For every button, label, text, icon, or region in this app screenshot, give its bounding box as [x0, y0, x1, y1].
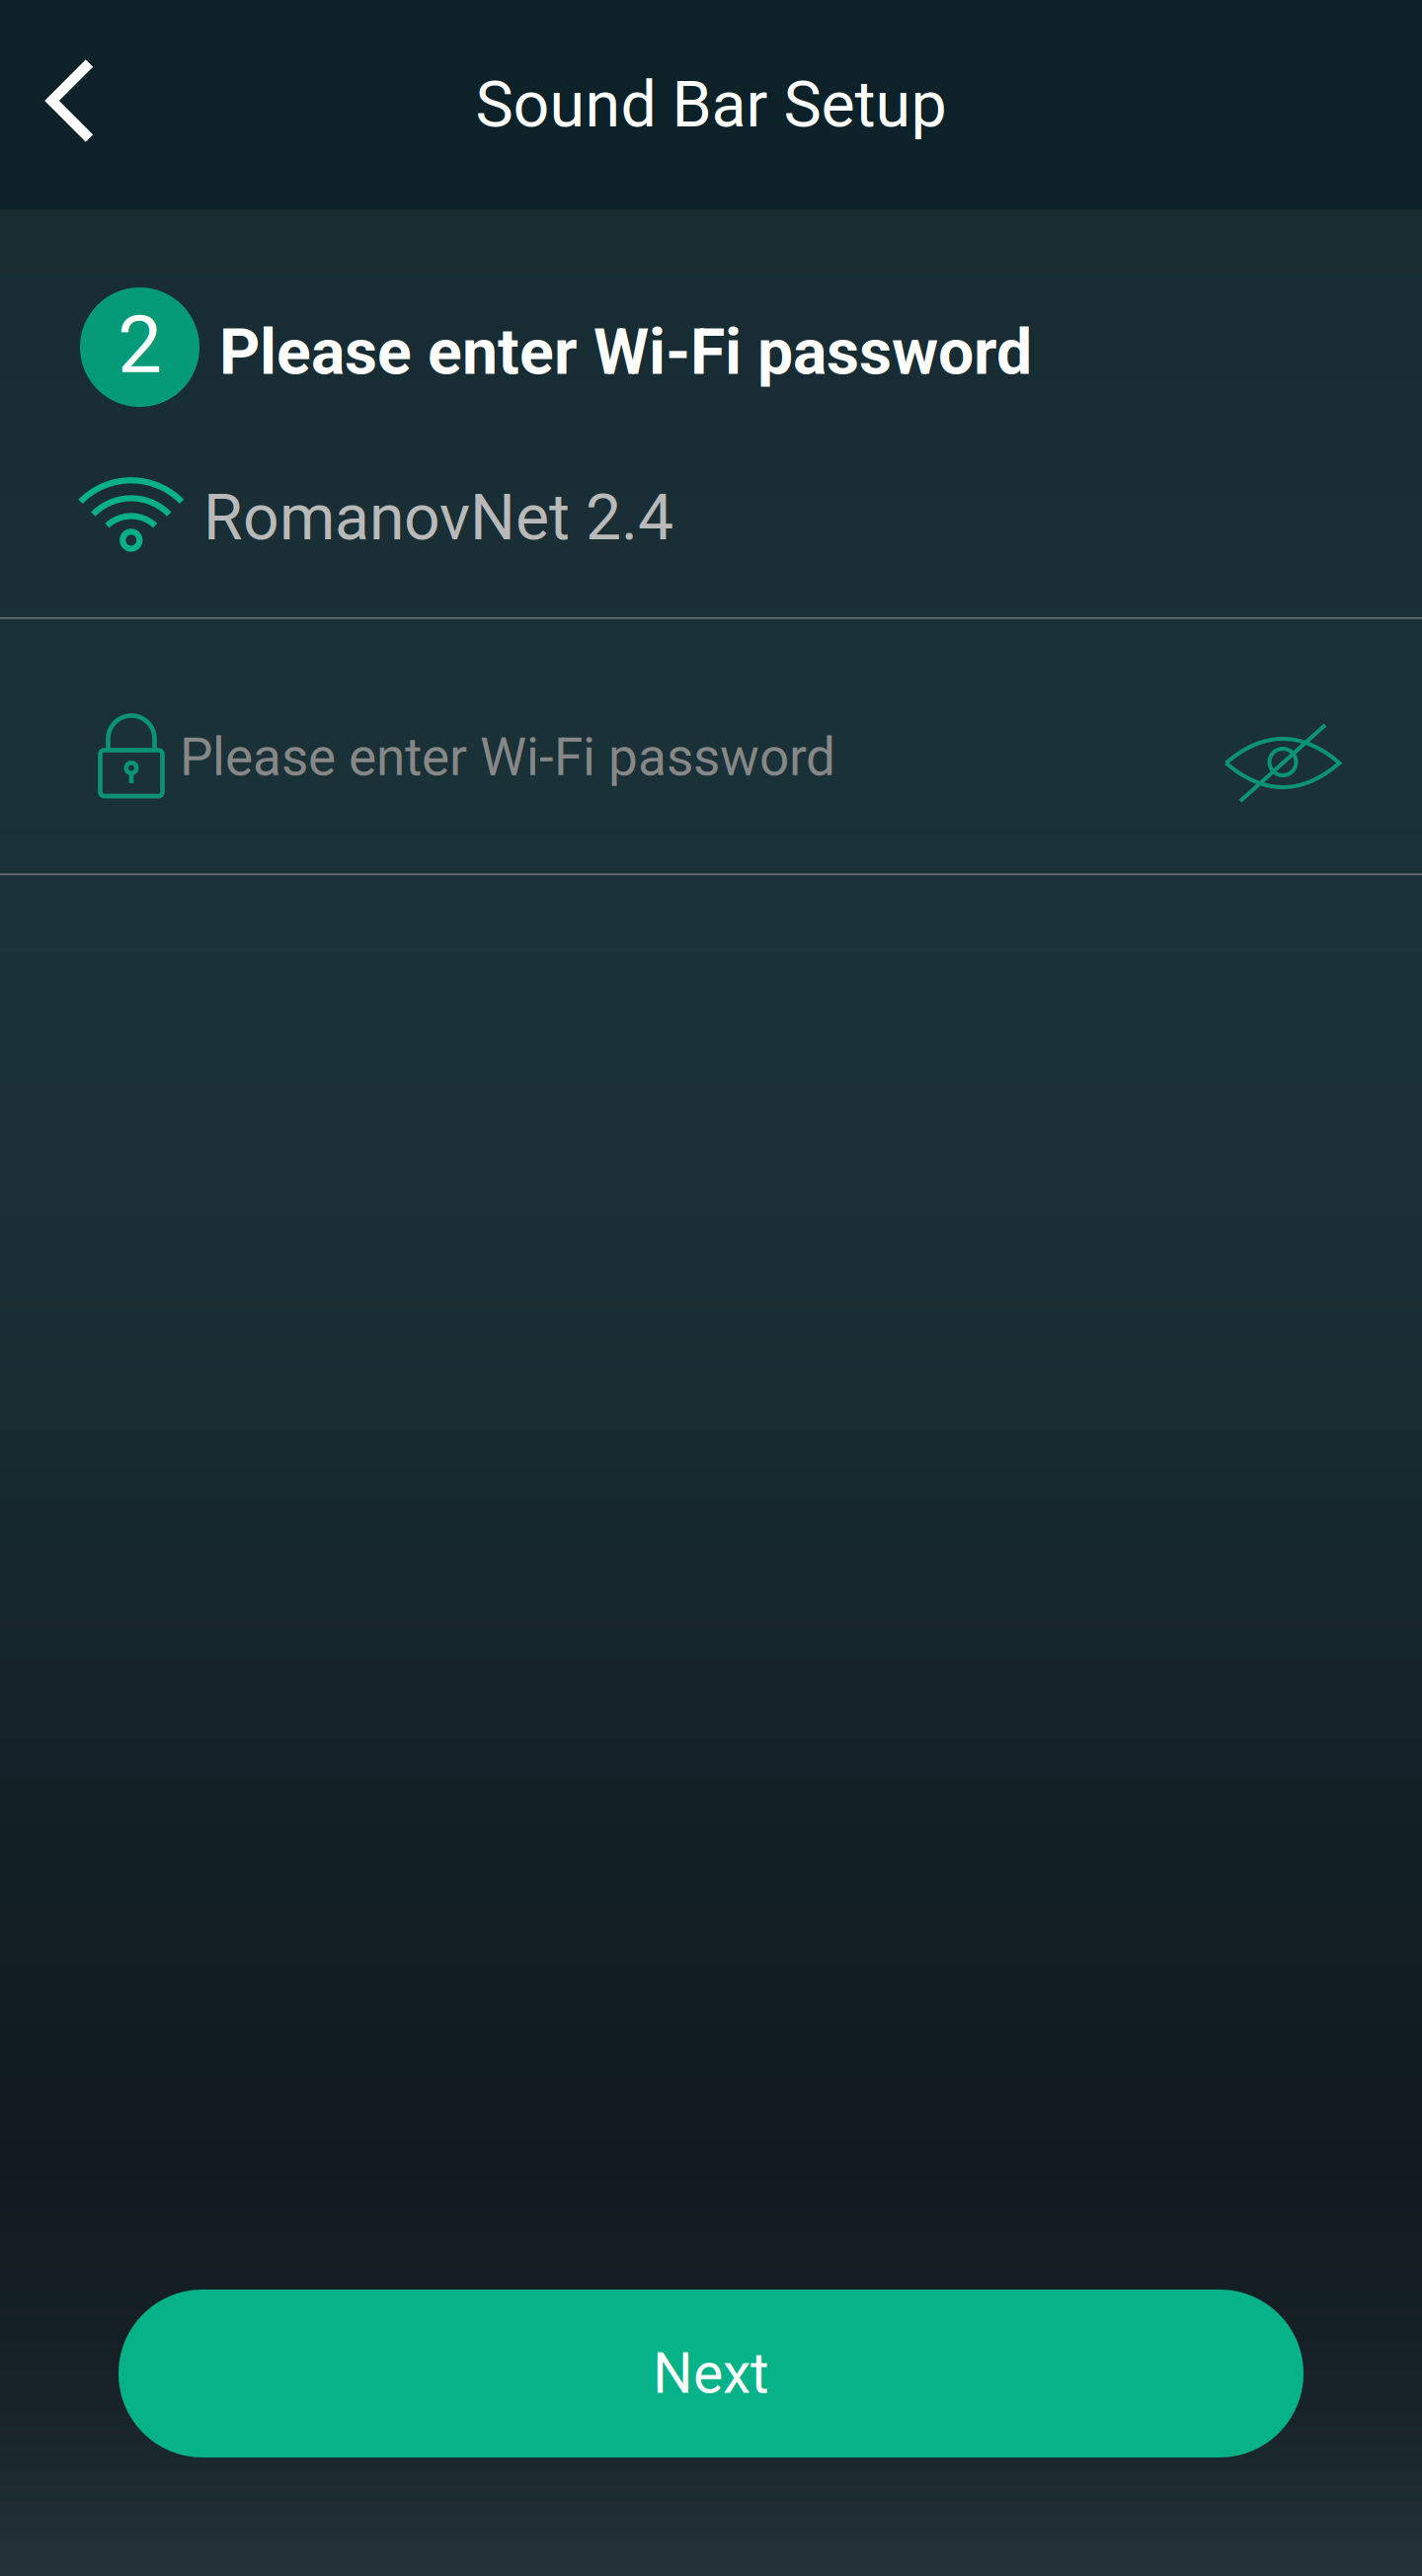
staticText: Please enter Wi-Fi password: [180, 726, 835, 788]
staticText: Sound Bar Setup: [475, 67, 947, 142]
button[interactable]: Show password: [1184, 667, 1422, 825]
staticText: 2: [118, 299, 162, 392]
staticText: Next: [653, 2341, 769, 2406]
staticText: Please enter Wi-Fi password: [219, 315, 1032, 389]
button[interactable]: Back: [0, 0, 139, 211]
button[interactable]: Next: [118, 2290, 1303, 2457]
staticText: RomanovNet 2.4: [203, 480, 673, 555]
